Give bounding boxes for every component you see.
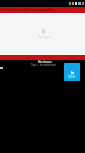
staticText: View <box>12 8 18 12</box>
button[interactable]: Edit <box>6 7 12 13</box>
button[interactable]: File <box>0 7 6 13</box>
button[interactable]: Tools <box>30 7 36 13</box>
button[interactable]: More <box>48 7 54 13</box>
staticText: File <box>1 8 6 12</box>
staticText: Edit <box>6 8 12 12</box>
staticText: Tap + to add one <box>31 63 56 67</box>
staticText: OPEN <box>68 75 76 79</box>
button[interactable]: Help <box>36 7 42 13</box>
button[interactable]: View <box>12 7 18 13</box>
button[interactable]: Run <box>24 7 30 13</box>
button[interactable]: OPEN <box>64 63 80 81</box>
staticText: More <box>48 8 54 12</box>
staticText: Go <box>19 8 23 12</box>
staticText: No items <box>38 60 52 64</box>
staticText: Run <box>24 8 30 12</box>
staticText: No apps <box>37 34 51 39</box>
staticText: Apps <box>42 8 48 12</box>
button[interactable]: Go <box>18 7 24 13</box>
button[interactable]: Apps <box>42 7 48 13</box>
staticText: Help <box>36 8 42 12</box>
staticText: Tools <box>30 8 36 12</box>
